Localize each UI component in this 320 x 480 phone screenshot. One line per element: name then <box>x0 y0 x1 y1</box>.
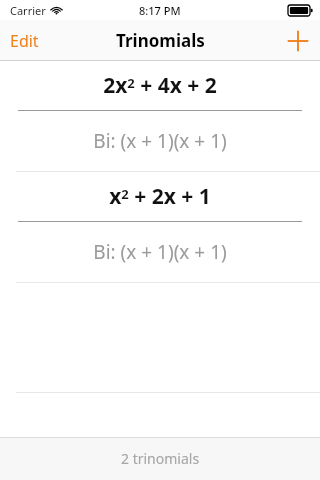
staticText: 2 trinomials <box>121 449 200 468</box>
button[interactable]: Edit <box>0 22 49 60</box>
staticText: Trinomials <box>116 29 205 52</box>
staticText: 8:17 PM <box>139 3 181 18</box>
button[interactable]: Add trinomial <box>276 24 320 58</box>
staticText: Bi: (x + 1)(x + 1) <box>93 239 227 265</box>
button[interactable]: x2 + 2x + 1 <box>0 172 320 282</box>
staticText: Carrier <box>10 3 46 18</box>
staticText: Bi: (x + 1)(x + 1) <box>93 128 227 154</box>
staticText: Edit <box>10 30 39 52</box>
staticText: x2 + 2x + 1 <box>109 182 211 211</box>
button[interactable]: 2x2 + 4x + 2 <box>0 61 320 171</box>
staticText: 2x2 + 4x + 2 <box>103 71 217 100</box>
